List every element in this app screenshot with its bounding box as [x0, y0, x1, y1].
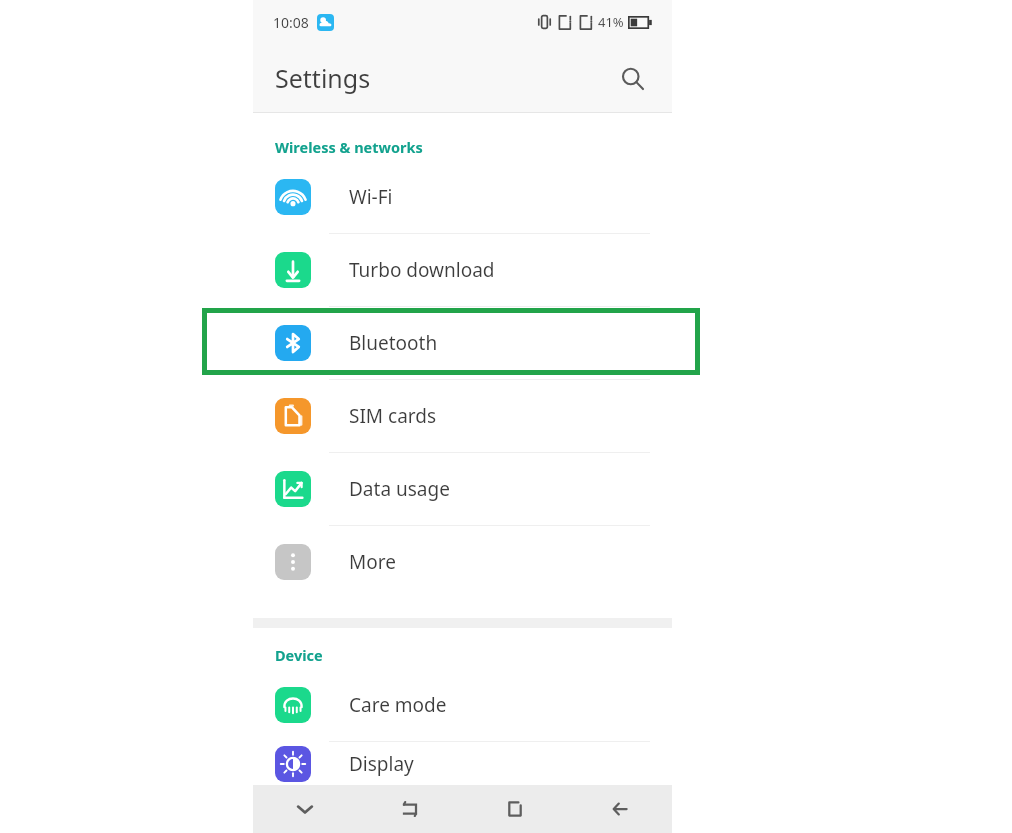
- staticText: Bluetooth: [349, 330, 438, 356]
- staticText: Turbo download: [349, 257, 495, 283]
- button[interactable]: Wi-Fi: [253, 161, 672, 234]
- staticText: Settings: [275, 61, 371, 95]
- staticText: Device: [275, 645, 323, 665]
- staticText: More: [349, 549, 396, 575]
- button[interactable]: Recents: [462, 785, 567, 833]
- button[interactable]: Bluetooth: [253, 307, 672, 380]
- staticText: SIM cards: [349, 403, 437, 429]
- button[interactable]: Search: [610, 56, 654, 100]
- staticText: Data usage: [349, 476, 450, 502]
- button[interactable]: Switch: [357, 785, 462, 833]
- staticText: Care mode: [349, 692, 447, 718]
- button[interactable]: Care mode: [253, 669, 672, 742]
- staticText: Display: [349, 751, 414, 777]
- staticText: Wireless & networks: [275, 137, 423, 157]
- staticText: 41%: [598, 13, 624, 31]
- staticText: 10:08: [273, 13, 309, 32]
- button[interactable]: Turbo download: [253, 234, 672, 307]
- button[interactable]: Display: [253, 742, 672, 785]
- button[interactable]: Data usage: [253, 453, 672, 526]
- staticText: Wi-Fi: [349, 184, 393, 210]
- button[interactable]: SIM cards: [253, 380, 672, 453]
- button[interactable]: More: [253, 526, 672, 598]
- button[interactable]: Back: [567, 785, 672, 833]
- button[interactable]: Hide keyboard: [253, 785, 357, 833]
